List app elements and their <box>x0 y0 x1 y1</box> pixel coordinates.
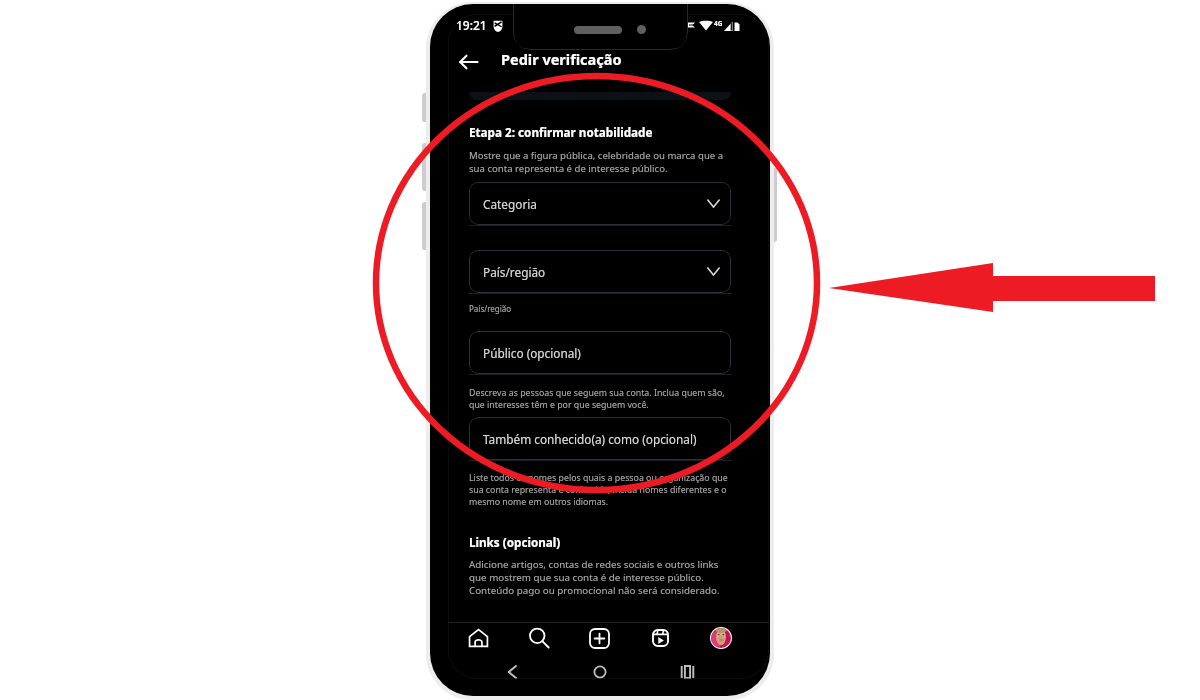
button[interactable]: Categoria <box>469 182 731 225</box>
button[interactable]: País/região <box>469 250 731 293</box>
staticText: Categoria <box>483 196 537 212</box>
button[interactable]: Reels <box>643 621 677 655</box>
staticText: Público (opcional) <box>483 345 581 361</box>
button[interactable]: Perfil <box>704 621 738 655</box>
button[interactable]: Voltar <box>449 46 487 78</box>
staticText: Também conhecido(a) como (opcional) <box>483 431 697 447</box>
staticText: Pedir verificação <box>501 49 622 69</box>
staticText: Mostre que a figura pública, celebridade… <box>469 149 734 175</box>
staticText: Etapa 2: confirmar notabilidade <box>469 124 653 140</box>
staticText: Links (opcional) <box>469 534 561 550</box>
button[interactable]: Pesquisar <box>522 621 556 655</box>
staticText: País/região <box>469 303 512 314</box>
button[interactable]: Criar <box>582 621 616 655</box>
button[interactable]: Público (opcional) <box>469 331 731 374</box>
staticText: Adicione artigos, contas de redes sociai… <box>469 558 734 597</box>
staticText: Liste todos os nomes pelos quais a pesso… <box>469 472 734 508</box>
staticText: Descreva as pessoas que seguem sua conta… <box>469 387 734 411</box>
staticText: País/região <box>483 264 546 280</box>
staticText: 19:21 <box>456 17 487 33</box>
button[interactable]: Também conhecido(a) como (opcional) <box>469 417 731 460</box>
button[interactable]: Início <box>461 621 495 655</box>
staticText: 4G <box>714 19 723 28</box>
